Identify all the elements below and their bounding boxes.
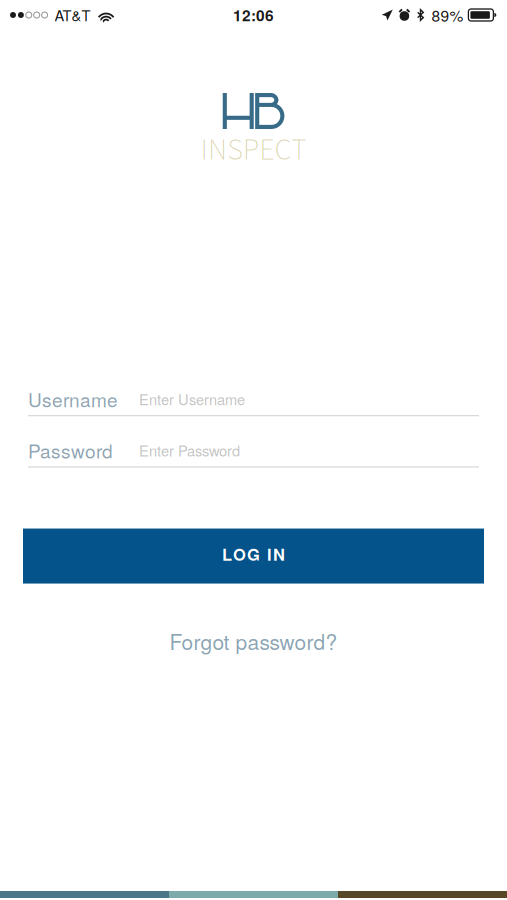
staticText: INSPECT (201, 129, 306, 171)
button[interactable]: Password (28, 443, 479, 468)
staticText: Enter Password (139, 440, 240, 461)
staticText: Password (28, 437, 113, 464)
staticText: AT&T (55, 4, 91, 25)
staticText: Forgot password? (169, 626, 337, 656)
staticText: LOG IN (222, 542, 285, 566)
staticText: 89% (431, 4, 463, 26)
button[interactable]: LOG IN (23, 529, 484, 584)
button[interactable]: Forgot password? (169, 627, 337, 655)
staticText: Username (28, 385, 118, 413)
button[interactable]: Username (28, 391, 479, 416)
staticText: 12:06 (233, 4, 274, 26)
staticText: Enter Username (139, 388, 245, 409)
